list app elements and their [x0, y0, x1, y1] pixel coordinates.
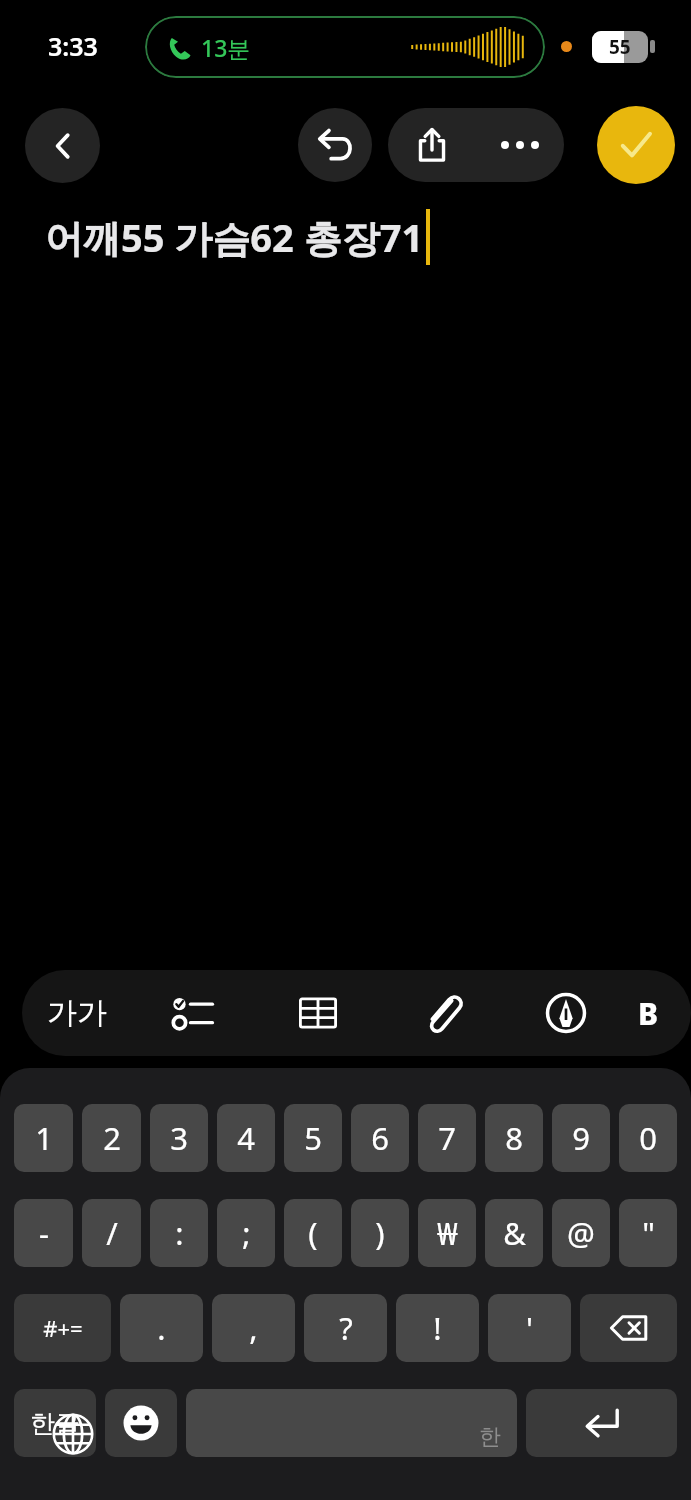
button[interactable]: Enter	[526, 1389, 677, 1457]
button[interactable]: 6	[351, 1104, 409, 1172]
staticText: 7	[438, 1117, 456, 1159]
button[interactable]: 8	[485, 1104, 543, 1172]
button[interactable]: ₩	[418, 1199, 476, 1267]
button[interactable]: )	[351, 1199, 409, 1267]
button[interactable]: ?	[304, 1294, 387, 1362]
staticText: -	[39, 1212, 49, 1254]
button[interactable]: Table	[256, 970, 380, 1056]
staticText: 3:33	[48, 29, 98, 63]
button[interactable]: 7	[418, 1104, 476, 1172]
button[interactable]: 한글	[14, 1389, 96, 1457]
button[interactable]: Draw	[504, 970, 628, 1056]
button[interactable]: 4	[217, 1104, 275, 1172]
staticText: 5	[304, 1117, 322, 1159]
staticText: B	[638, 993, 659, 1034]
staticText: 한	[479, 1423, 501, 1451]
staticText: 어깨55 가슴62 총장71	[45, 211, 424, 263]
staticText: :	[175, 1212, 184, 1254]
button[interactable]: :	[150, 1199, 208, 1267]
button[interactable]: !	[396, 1294, 479, 1362]
button[interactable]: (	[284, 1199, 342, 1267]
staticText: #+=	[43, 1313, 83, 1343]
button[interactable]: Done	[597, 106, 675, 184]
button[interactable]: Share	[388, 108, 476, 182]
button[interactable]: 1	[14, 1104, 73, 1172]
button[interactable]: -	[14, 1199, 73, 1267]
button[interactable]: 3	[150, 1104, 208, 1172]
staticText: 한글	[30, 1408, 80, 1439]
staticText: )	[375, 1212, 385, 1254]
staticText: ₩	[437, 1212, 458, 1254]
button[interactable]: Space	[186, 1389, 517, 1457]
staticText: &	[503, 1212, 526, 1254]
button[interactable]: More options	[476, 108, 564, 182]
staticText: "	[642, 1212, 655, 1254]
button[interactable]: .	[120, 1294, 203, 1362]
button[interactable]: &	[485, 1199, 543, 1267]
button[interactable]: Emoji	[105, 1389, 177, 1457]
button[interactable]: 9	[552, 1104, 610, 1172]
button[interactable]: @	[552, 1199, 610, 1267]
staticText: /	[106, 1212, 118, 1254]
staticText: 0	[639, 1117, 657, 1159]
button[interactable]: 2	[82, 1104, 141, 1172]
staticText: 1	[35, 1117, 53, 1159]
staticText: (	[308, 1212, 318, 1254]
staticText: ?	[339, 1307, 353, 1349]
staticText: !	[433, 1307, 442, 1349]
staticText: .	[157, 1307, 166, 1349]
button[interactable]: Backspace	[580, 1294, 677, 1362]
button[interactable]: #+=	[14, 1294, 111, 1362]
button[interactable]: Back	[25, 108, 100, 183]
staticText: 6	[371, 1117, 389, 1159]
button[interactable]: Bold	[628, 970, 691, 1056]
button[interactable]: ;	[217, 1199, 275, 1267]
staticText: 55	[609, 34, 631, 60]
button[interactable]: Undo	[298, 108, 372, 182]
button[interactable]: Attach	[380, 970, 504, 1056]
staticText: 가가	[47, 994, 107, 1032]
button[interactable]: Change keyboard language	[47, 1408, 99, 1460]
staticText: 13분	[201, 32, 251, 63]
button[interactable]: Checklist	[132, 970, 256, 1056]
staticText: 9	[572, 1117, 590, 1159]
button[interactable]: "	[619, 1199, 677, 1267]
staticText: ;	[242, 1212, 251, 1254]
button[interactable]: '	[488, 1294, 571, 1362]
staticText: 8	[505, 1117, 523, 1159]
button[interactable]: /	[82, 1199, 141, 1267]
button[interactable]: 0	[619, 1104, 677, 1172]
button[interactable]: ,	[212, 1294, 295, 1362]
staticText: 2	[103, 1117, 121, 1159]
staticText: 3	[170, 1117, 188, 1159]
button[interactable]: 5	[284, 1104, 342, 1172]
staticText: @	[567, 1212, 595, 1254]
button[interactable]: 가가	[22, 970, 132, 1056]
staticText: 4	[237, 1117, 255, 1159]
staticText: ,	[249, 1307, 258, 1349]
staticText: '	[526, 1307, 533, 1349]
